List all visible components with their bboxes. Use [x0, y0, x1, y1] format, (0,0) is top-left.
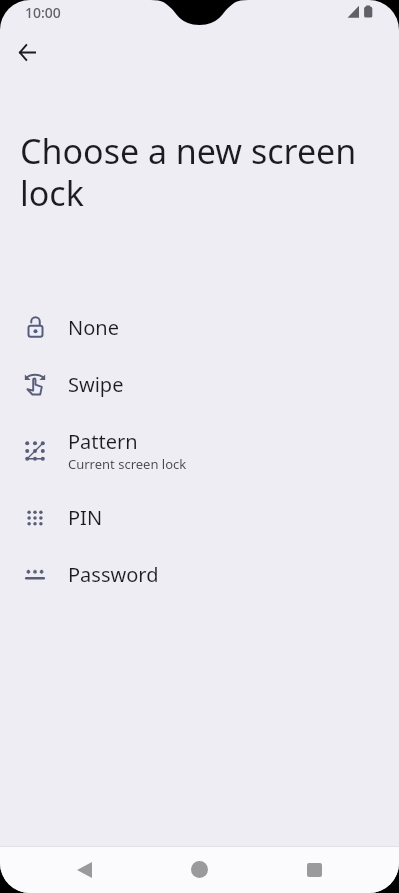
- button[interactable]: Swipe: [0, 356, 399, 413]
- staticText: Swipe: [68, 371, 124, 398]
- button[interactable]: Pattern: [0, 413, 399, 489]
- button[interactable]: Recent apps: [286, 846, 343, 893]
- button[interactable]: Password: [0, 546, 399, 603]
- staticText: 10:00: [25, 3, 61, 22]
- button[interactable]: None: [0, 299, 399, 356]
- button[interactable]: Back: [56, 846, 113, 893]
- staticText: PIN: [68, 504, 103, 531]
- button[interactable]: PIN: [0, 489, 399, 546]
- button[interactable]: Back: [7, 32, 47, 72]
- staticText: Pattern: [68, 428, 138, 455]
- button[interactable]: Home: [171, 846, 228, 893]
- staticText: None: [68, 314, 119, 341]
- staticText: Current screen lock: [68, 455, 187, 473]
- staticText: Password: [68, 561, 159, 588]
- staticText: Choose a new screen lock: [20, 128, 365, 216]
